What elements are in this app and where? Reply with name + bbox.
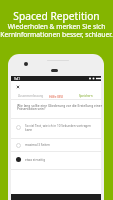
staticText: etwa einseitig xyxy=(25,158,46,162)
staticText: Speichern xyxy=(79,94,93,98)
staticText: maximal 3 Seiten xyxy=(25,143,50,147)
staticText: Wie lang sollte eine Gliederung vor die … xyxy=(17,103,103,111)
button[interactable]: etwa einseitig xyxy=(11,151,101,168)
button[interactable]: maximal 3 Seiten xyxy=(11,138,101,152)
button[interactable]: Close xyxy=(15,84,21,90)
button[interactable]: Speichern xyxy=(77,93,95,99)
staticText: 9:41 xyxy=(14,77,20,81)
staticText: So viel Text, wie ich in 10 Sekunden vor… xyxy=(25,124,91,132)
staticText: Spaced Repetition xyxy=(0,9,113,23)
staticText: Zusammenfassung xyxy=(18,94,44,98)
staticText: Wiederholen & merken Sie sich Kerninform… xyxy=(0,22,113,39)
button[interactable]: Hilfe (85) xyxy=(47,93,66,100)
button[interactable]: Zusammenfassung xyxy=(16,93,46,99)
staticText: Hilfe (85) xyxy=(49,94,64,99)
button[interactable]: So viel Text, wie ich in 10 Sekunden vor… xyxy=(11,118,101,137)
